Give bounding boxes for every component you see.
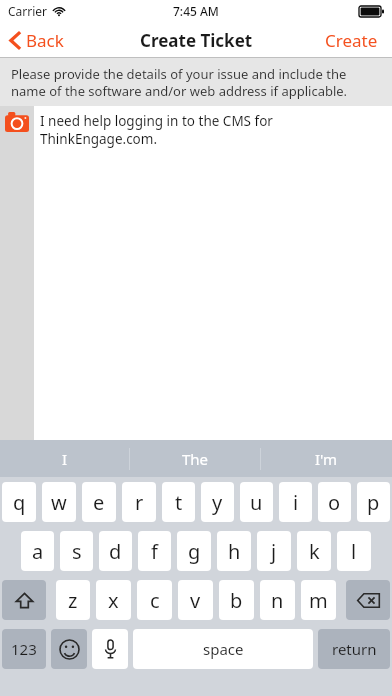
button[interactable]: b [219, 580, 254, 620]
staticText: I need help logging in to the CMS for Th… [40, 112, 392, 148]
button[interactable]: d [99, 531, 132, 571]
button[interactable]: a [21, 531, 54, 571]
button[interactable]: I need help logging in to the CMS for Th… [34, 106, 392, 440]
button[interactable]: I'm [261, 440, 392, 477]
button[interactable]: Back [0, 25, 74, 56]
staticText: u [250, 489, 263, 516]
staticText: Carrier [8, 3, 48, 19]
staticText: c [150, 587, 160, 614]
staticText: k [309, 538, 320, 565]
staticText: s [72, 538, 82, 565]
button[interactable]: p [357, 482, 390, 522]
button[interactable]: u [240, 482, 273, 522]
button[interactable]: Backspace [346, 580, 390, 620]
button[interactable]: l [337, 531, 371, 571]
staticText: I'm [315, 449, 338, 469]
staticText: j [271, 538, 277, 565]
staticText: v [190, 587, 201, 614]
staticText: x [108, 587, 119, 614]
staticText: n [271, 587, 284, 614]
button[interactable]: n [260, 580, 295, 620]
staticText: w [51, 489, 67, 516]
button[interactable]: e [82, 482, 116, 522]
button[interactable]: Emoji [51, 629, 87, 669]
staticText: f [151, 538, 158, 565]
button[interactable]: o [318, 482, 351, 522]
staticText: g [188, 538, 201, 565]
staticText: i [293, 489, 299, 516]
button[interactable]: Attach photo [0, 106, 34, 440]
staticText: return [332, 639, 377, 659]
staticText: t [175, 489, 183, 516]
staticText: h [228, 538, 241, 565]
button[interactable]: return [318, 629, 390, 669]
button[interactable]: Create [311, 24, 392, 57]
staticText: e [93, 489, 105, 516]
staticText: Back [26, 29, 64, 52]
staticText: a [32, 538, 44, 565]
staticText: d [109, 538, 122, 565]
button[interactable]: g [177, 531, 211, 571]
staticText: Create Ticket [140, 29, 253, 52]
button[interactable]: f [138, 531, 171, 571]
staticText: The [182, 449, 209, 469]
staticText: q [13, 489, 26, 516]
button[interactable]: c [137, 580, 172, 620]
button[interactable]: j [257, 531, 291, 571]
button[interactable]: w [42, 482, 76, 522]
staticText: Please provide the details of your issue… [11, 65, 381, 100]
button[interactable]: Shift [2, 580, 46, 620]
staticText: r [135, 489, 144, 516]
button[interactable]: z [56, 580, 90, 620]
staticText: l [351, 538, 357, 565]
staticText: z [68, 587, 78, 614]
staticText: o [328, 489, 341, 516]
button[interactable]: v [178, 580, 213, 620]
button[interactable]: m [301, 580, 336, 620]
button[interactable]: h [217, 531, 251, 571]
staticText: 7:45 AM [173, 3, 219, 19]
staticText: Create [325, 29, 378, 52]
staticText: p [367, 489, 380, 516]
button[interactable]: Dictation [92, 629, 128, 669]
button[interactable]: s [60, 531, 93, 571]
button[interactable]: q [2, 482, 36, 522]
button[interactable]: y [201, 482, 234, 522]
button[interactable]: i [279, 482, 312, 522]
staticText: m [309, 587, 328, 614]
button[interactable]: x [96, 580, 131, 620]
staticText: b [230, 587, 243, 614]
button[interactable]: r [122, 482, 156, 522]
staticText: I [62, 449, 68, 469]
staticText: y [212, 489, 223, 516]
button[interactable]: The [130, 440, 261, 477]
button[interactable]: space [133, 629, 313, 669]
button[interactable]: I [0, 440, 130, 477]
button[interactable]: 123 [2, 629, 46, 669]
button[interactable]: k [297, 531, 331, 571]
staticText: space [203, 639, 244, 659]
button[interactable]: t [162, 482, 195, 522]
staticText: 123 [11, 639, 37, 659]
